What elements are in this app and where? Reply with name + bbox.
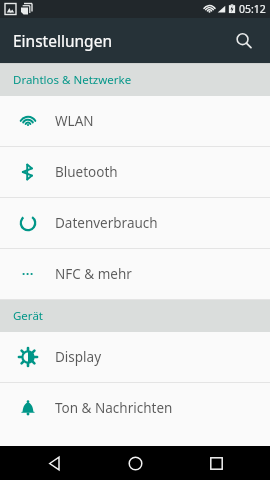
- button[interactable]: Datenverbrauch: [0, 198, 270, 248]
- button[interactable]: Startseite: [108, 446, 162, 480]
- staticText: Gerät: [13, 308, 43, 324]
- staticText: Bluetooth: [55, 163, 118, 181]
- button[interactable]: Bluetooth: [0, 147, 270, 197]
- staticText: Display: [55, 348, 102, 366]
- button[interactable]: Letzte Apps: [189, 446, 243, 480]
- staticText: 05:12: [239, 2, 266, 16]
- button[interactable]: Suchen: [226, 23, 262, 59]
- staticText: Einstellungen: [13, 30, 112, 51]
- button[interactable]: Zurück: [27, 446, 81, 480]
- button[interactable]: Display: [0, 332, 270, 382]
- staticText: NFC & mehr: [55, 265, 132, 283]
- button[interactable]: WLAN: [0, 96, 270, 146]
- staticText: WLAN: [55, 112, 94, 130]
- button[interactable]: Ton & Nachrichten: [0, 383, 270, 433]
- staticText: Drahtlos & Netzwerke: [13, 72, 132, 88]
- staticText: Ton & Nachrichten: [55, 399, 173, 417]
- staticText: Datenverbrauch: [55, 214, 158, 232]
- button[interactable]: NFC & mehr: [0, 249, 270, 299]
